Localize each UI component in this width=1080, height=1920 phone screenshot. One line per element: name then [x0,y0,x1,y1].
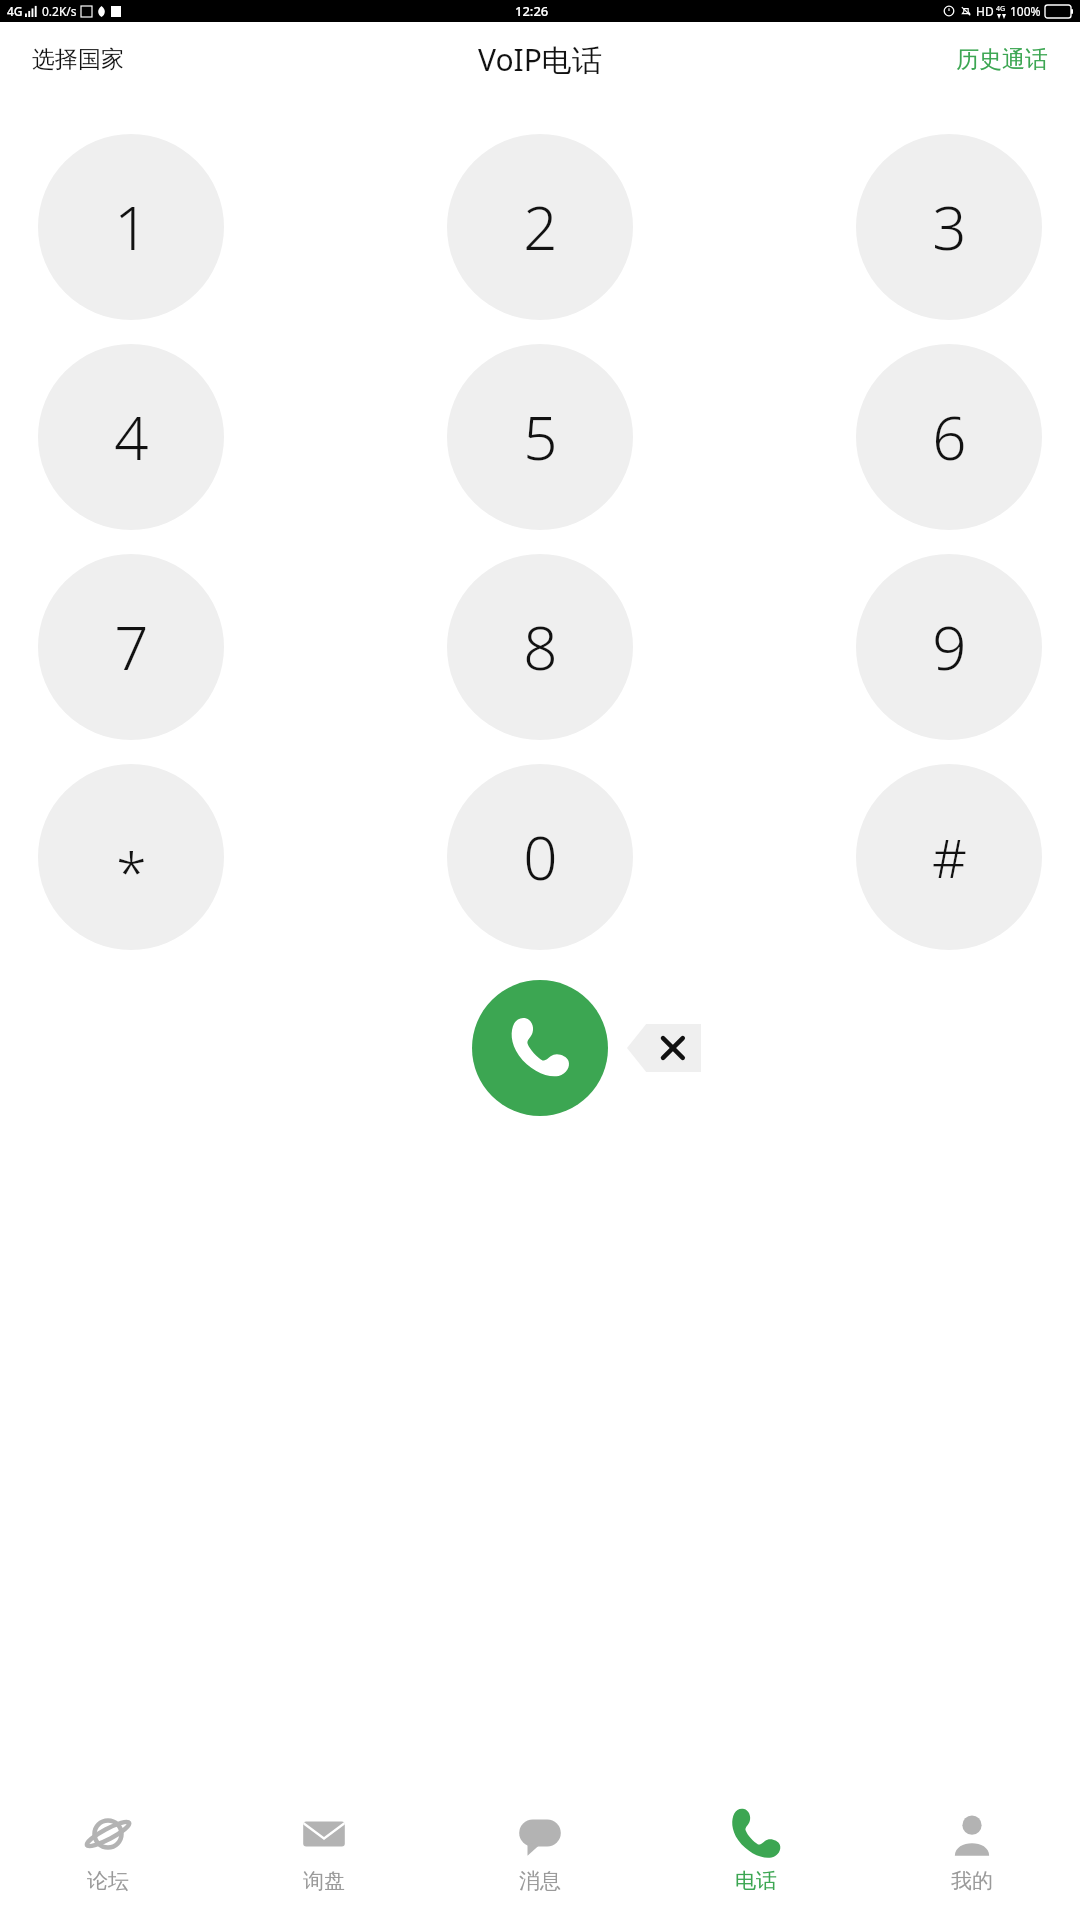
button[interactable]: 论坛 [0,1794,216,1920]
staticText: 100% [1010,3,1041,19]
staticText: 8 [523,606,558,688]
button[interactable]: 3 [856,134,1042,320]
staticText: 7 [114,606,149,688]
staticText: 4G [7,3,23,19]
button[interactable]: 2 [447,134,633,320]
staticText: 0 [523,816,558,898]
staticText: * [116,833,147,909]
staticText: 1 [114,186,149,268]
staticText: 选择国家 [32,45,124,74]
button[interactable]: 5 [447,344,633,530]
staticText: 3 [932,186,967,268]
staticText: 9 [932,606,967,688]
button[interactable]: 选择国家 [22,39,134,80]
button[interactable]: 7 [38,554,224,740]
staticText: 历史通话 [956,45,1048,74]
staticText: VoIP电话 [478,39,602,80]
staticText: 6 [932,396,967,478]
staticText: 电话 [735,1868,777,1894]
button[interactable]: 1 [38,134,224,320]
button[interactable]: * [38,764,224,950]
button[interactable]: 8 [447,554,633,740]
button[interactable]: 询盘 [216,1794,432,1920]
button[interactable]: 删除 [627,1019,701,1077]
button[interactable]: 4 [38,344,224,530]
staticText: HD [976,3,994,19]
staticText: 5 [523,396,558,478]
button[interactable]: 9 [856,554,1042,740]
button[interactable]: 历史通话 [946,39,1058,80]
button[interactable]: 电话 [648,1794,864,1920]
staticText: 0.2K/s [42,3,77,19]
staticText: 4 [114,396,149,478]
staticText: 2 [523,186,558,268]
button[interactable]: 6 [856,344,1042,530]
staticText: 12:26 [515,2,549,20]
staticText: 4G [996,4,1006,14]
staticText: 询盘 [303,1868,345,1894]
staticText: 论坛 [87,1868,129,1894]
staticText: # [932,820,967,894]
button[interactable]: 我的 [864,1794,1080,1920]
button[interactable]: 0 [447,764,633,950]
button[interactable]: # [856,764,1042,950]
button[interactable]: 消息 [432,1794,648,1920]
button[interactable]: 拨打电话 [472,980,608,1116]
staticText: 我的 [951,1868,993,1894]
staticText: 消息 [519,1868,561,1894]
